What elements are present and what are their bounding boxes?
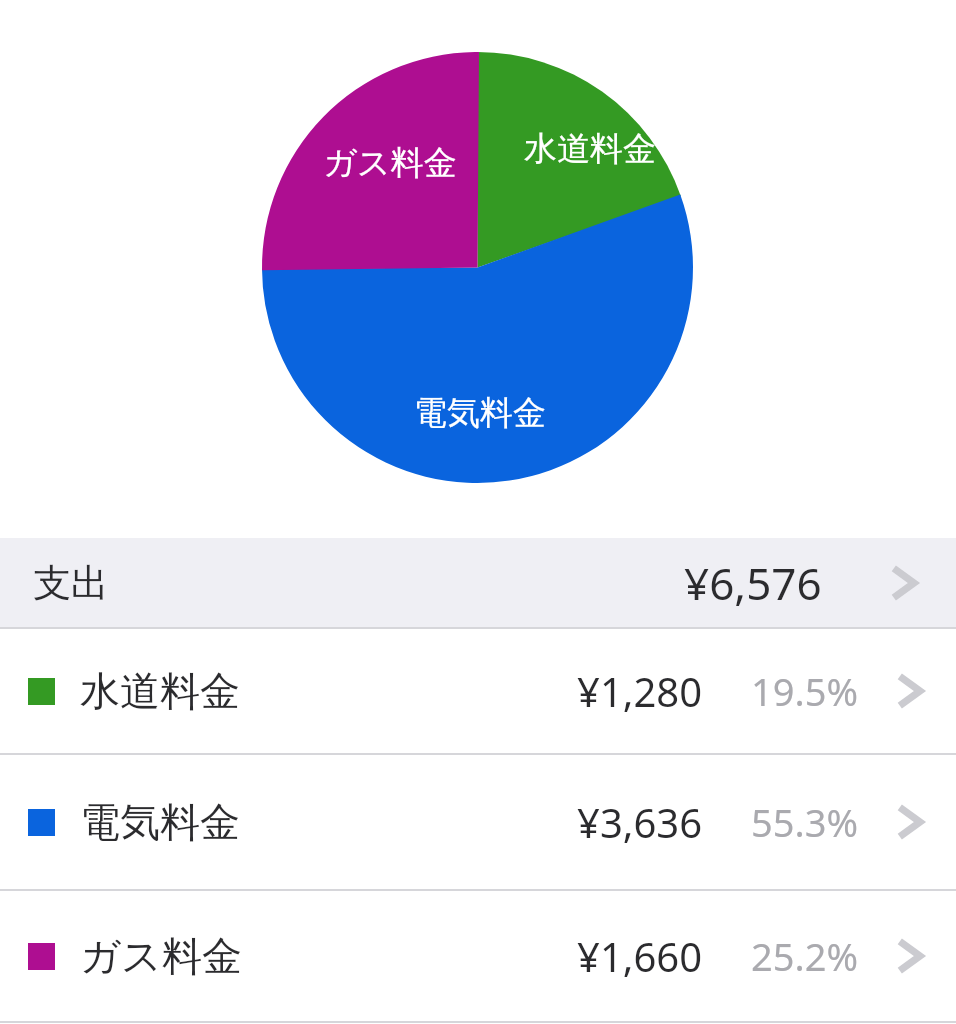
staticText: 電気料金 [380,392,580,434]
button[interactable]: 支出 [0,538,956,627]
staticText: 電気料金 [80,797,240,847]
staticText: 支出 [33,559,109,607]
other: 水道料金 の詳細 [886,668,932,714]
other: ガス料金 の詳細 [886,933,932,979]
staticText: ガス料金 [80,931,242,981]
staticText: ¥3,636 [577,795,703,849]
staticText: ガス料金 [300,142,480,184]
staticText: 水道料金 [80,666,240,716]
staticText: ¥1,660 [577,929,703,983]
staticText: 水道料金 [490,128,690,170]
button[interactable]: 電気料金 [0,755,956,889]
staticText: ¥6,576 [684,553,822,613]
other: 支出の詳細 [880,560,926,606]
staticText: 55.3% [751,796,858,848]
button[interactable]: 水道料金 [0,629,956,753]
staticText: 25.2% [751,930,858,982]
staticText: 19.5% [751,665,858,717]
other: 電気料金 の詳細 [886,799,932,845]
button[interactable]: ガス料金 [0,891,956,1021]
staticText: ¥1,280 [577,664,703,718]
